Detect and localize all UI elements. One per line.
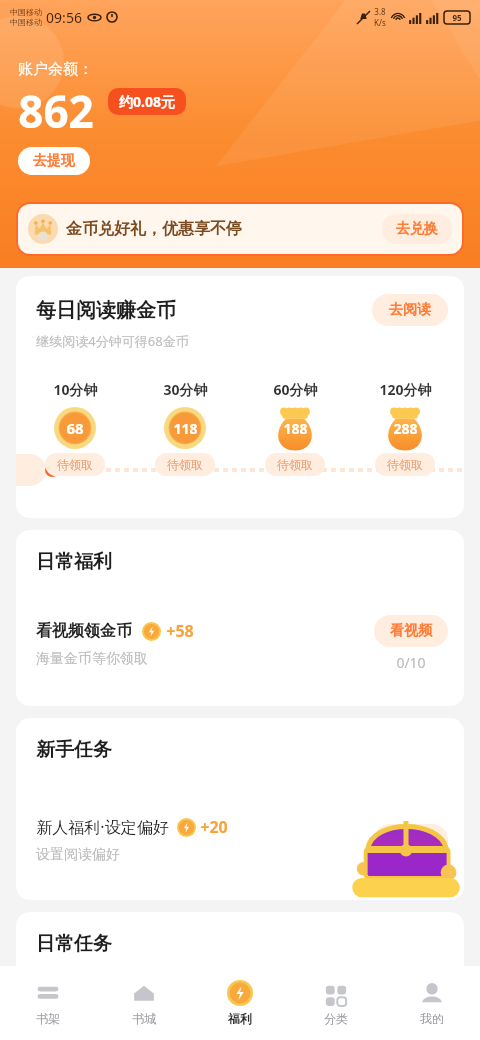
staticText: 09:56 — [46, 8, 82, 27]
staticText: 海量金币等你领取 — [36, 650, 148, 668]
staticText: 日常任务 — [36, 932, 112, 956]
button[interactable]: 去兑换 — [382, 214, 452, 244]
staticText: 约0.08元 — [119, 92, 175, 111]
staticText: 30分钟 — [163, 380, 208, 399]
staticText: 日常福利 — [36, 550, 112, 574]
staticText: 金币兑好礼，优惠享不停 — [66, 219, 242, 239]
button[interactable]: 福利 — [192, 966, 288, 1040]
staticText: 去完成 — [390, 831, 432, 849]
button[interactable]: 金币兑好礼，优惠享不停 — [18, 204, 462, 254]
button[interactable]: 60分钟 — [240, 380, 350, 476]
staticText: +20 — [200, 816, 228, 838]
staticText: 3.8 — [374, 6, 386, 17]
staticText: 书城 — [132, 1011, 156, 1026]
staticText: 每日阅读赚金币 — [36, 298, 176, 323]
staticText: 188 — [283, 419, 308, 438]
staticText: 待领取 — [387, 457, 423, 472]
staticText: +58 — [166, 620, 194, 642]
staticText: 68 — [66, 418, 84, 438]
staticText: 118 — [173, 419, 198, 438]
button[interactable]: 去完成 — [374, 824, 448, 856]
staticText: 60分钟 — [273, 380, 318, 399]
button[interactable]: 书架 — [0, 966, 96, 1040]
staticText: 10分钟 — [53, 380, 98, 399]
staticText: 继续阅读4分钟可得68金币 — [36, 332, 189, 350]
staticText: 中国移动 — [10, 17, 42, 27]
staticText: 去兑换 — [396, 220, 438, 238]
staticText: K/s — [374, 17, 386, 28]
staticText: 看视频 — [390, 622, 432, 640]
staticText: 我的 — [420, 1011, 444, 1026]
staticText: 待领取 — [167, 457, 203, 472]
staticText: 去阅读 — [389, 301, 431, 319]
staticText: 120分钟 — [379, 380, 432, 399]
staticText: 待领取 — [57, 457, 93, 472]
button[interactable]: 书城 — [96, 966, 192, 1040]
staticText: 0/10 — [396, 653, 426, 672]
button[interactable]: 120分钟 — [350, 380, 460, 476]
button[interactable]: 去阅读 — [372, 294, 448, 326]
staticText: 分类 — [324, 1011, 348, 1026]
button[interactable]: 30分钟 — [130, 380, 240, 476]
button[interactable]: 分类 — [288, 966, 384, 1040]
staticText: 新人福利·设定偏好 — [36, 816, 169, 838]
staticText: 书架 — [36, 1011, 60, 1026]
staticText: 288 — [393, 419, 418, 438]
staticText: 95 — [452, 12, 462, 23]
staticText: 账户余额： — [18, 60, 93, 79]
button[interactable]: 开宝箱得金币 — [350, 808, 462, 900]
staticText: 待领取 — [277, 457, 313, 472]
staticText: 中国移动 — [10, 7, 42, 17]
staticText: 新手任务 — [36, 738, 112, 762]
staticText: 看视频领金币 — [36, 621, 132, 641]
button[interactable]: 看视频 — [374, 615, 448, 647]
staticText: 862 — [18, 81, 94, 141]
staticText: 设置阅读偏好 — [36, 846, 120, 864]
staticText: 去提现 — [33, 152, 75, 170]
button[interactable]: 10分钟 — [20, 380, 130, 476]
button[interactable]: 去提现 — [18, 147, 90, 175]
button[interactable]: 我的 — [384, 966, 480, 1040]
button[interactable]: 约0.08元 — [108, 88, 186, 115]
staticText: 福利 — [228, 1011, 252, 1026]
